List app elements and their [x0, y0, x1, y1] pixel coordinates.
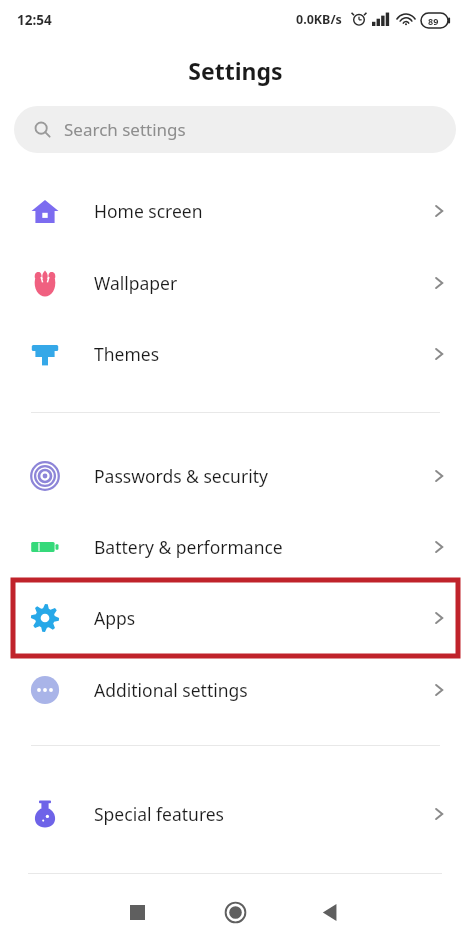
- button[interactable]: Search settings: [14, 106, 456, 153]
- staticText: Settings: [188, 55, 283, 86]
- button[interactable]: Special features: [0, 783, 470, 845]
- button[interactable]: Themes: [0, 323, 470, 385]
- staticText: Wallpaper: [94, 271, 178, 295]
- button[interactable]: Battery & performance: [0, 516, 470, 578]
- staticText: 12:54: [17, 11, 52, 29]
- staticText: Battery & performance: [94, 535, 283, 559]
- staticText: Passwords & security: [94, 464, 268, 488]
- staticText: 89: [428, 15, 439, 27]
- button[interactable]: Additional settings: [0, 659, 470, 721]
- button[interactable]: Passwords & security: [0, 445, 470, 507]
- button[interactable]: Home screen: [0, 180, 470, 242]
- button[interactable]: Apps: [0, 587, 470, 649]
- staticText: Additional settings: [94, 678, 248, 702]
- button[interactable]: Wallpaper: [0, 252, 470, 314]
- button[interactable]: Back: [303, 885, 357, 939]
- button[interactable]: Home: [208, 885, 262, 939]
- staticText: Home screen: [94, 199, 203, 223]
- staticText: Themes: [94, 342, 160, 366]
- staticText: Search settings: [64, 118, 186, 141]
- button[interactable]: Recents: [110, 885, 164, 939]
- staticText: 0.0KB/s: [296, 11, 342, 28]
- staticText: Apps: [94, 606, 136, 630]
- staticText: Special features: [94, 802, 225, 826]
